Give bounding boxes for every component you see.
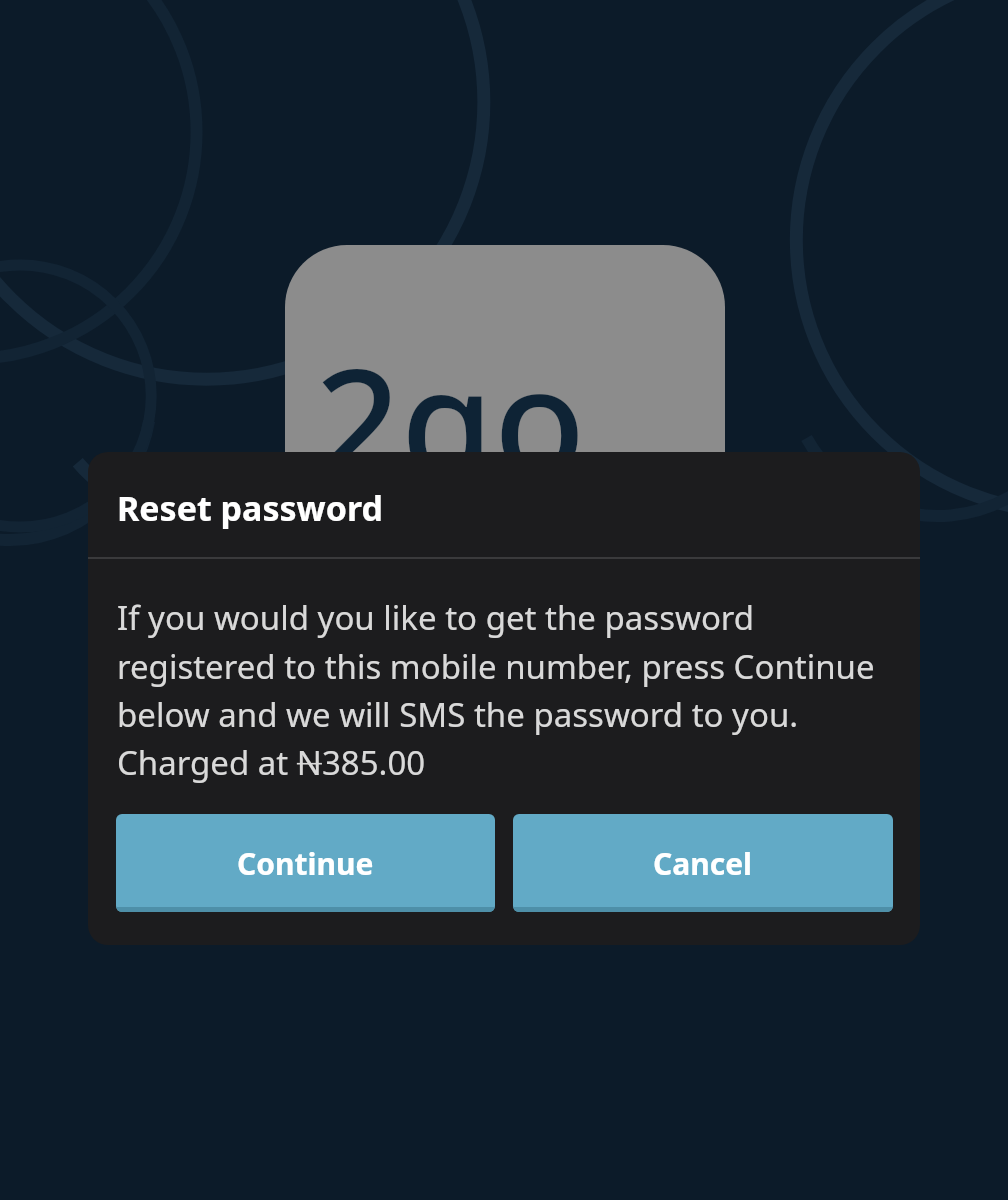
staticText: Cancel [653,843,753,884]
staticText: If you would you like to get the passwor… [117,595,898,784]
button[interactable]: Cancel [513,814,893,912]
staticText: Reset password [117,485,383,531]
staticText: Continue [237,843,374,884]
button[interactable]: Continue [116,814,495,912]
staticText: 2go [315,317,586,521]
